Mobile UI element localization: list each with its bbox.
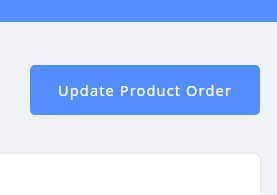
staticText: Update Product Order [58, 80, 232, 100]
button[interactable]: Update Product Order [30, 65, 260, 115]
